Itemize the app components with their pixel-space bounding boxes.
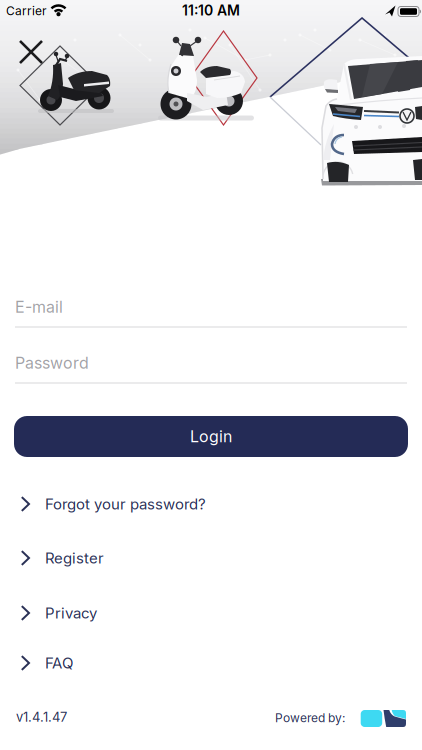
button[interactable]: FAQ [0,641,422,685]
staticText: Powered by: [275,711,345,725]
button[interactable]: Password [15,353,407,383]
button[interactable]: E-mail [15,297,407,327]
staticText: Carrier [6,4,47,18]
button[interactable] [361,710,407,727]
staticText: Forgot your password? [45,495,206,513]
staticText: Privacy [45,604,97,622]
staticText: v1.4.1.47 [16,709,67,725]
button[interactable] [9,30,53,74]
button[interactable]: Login [14,416,408,457]
button[interactable]: Forgot your password? [0,482,422,526]
staticText: E-mail [15,297,63,316]
staticText: Password [15,353,89,372]
button[interactable]: Privacy [0,591,422,635]
staticText: Login [190,427,232,446]
staticText: Register [45,549,104,567]
staticText: FAQ [45,654,73,672]
staticText: 11:10 AM [182,2,240,19]
button[interactable]: Register [0,536,422,580]
